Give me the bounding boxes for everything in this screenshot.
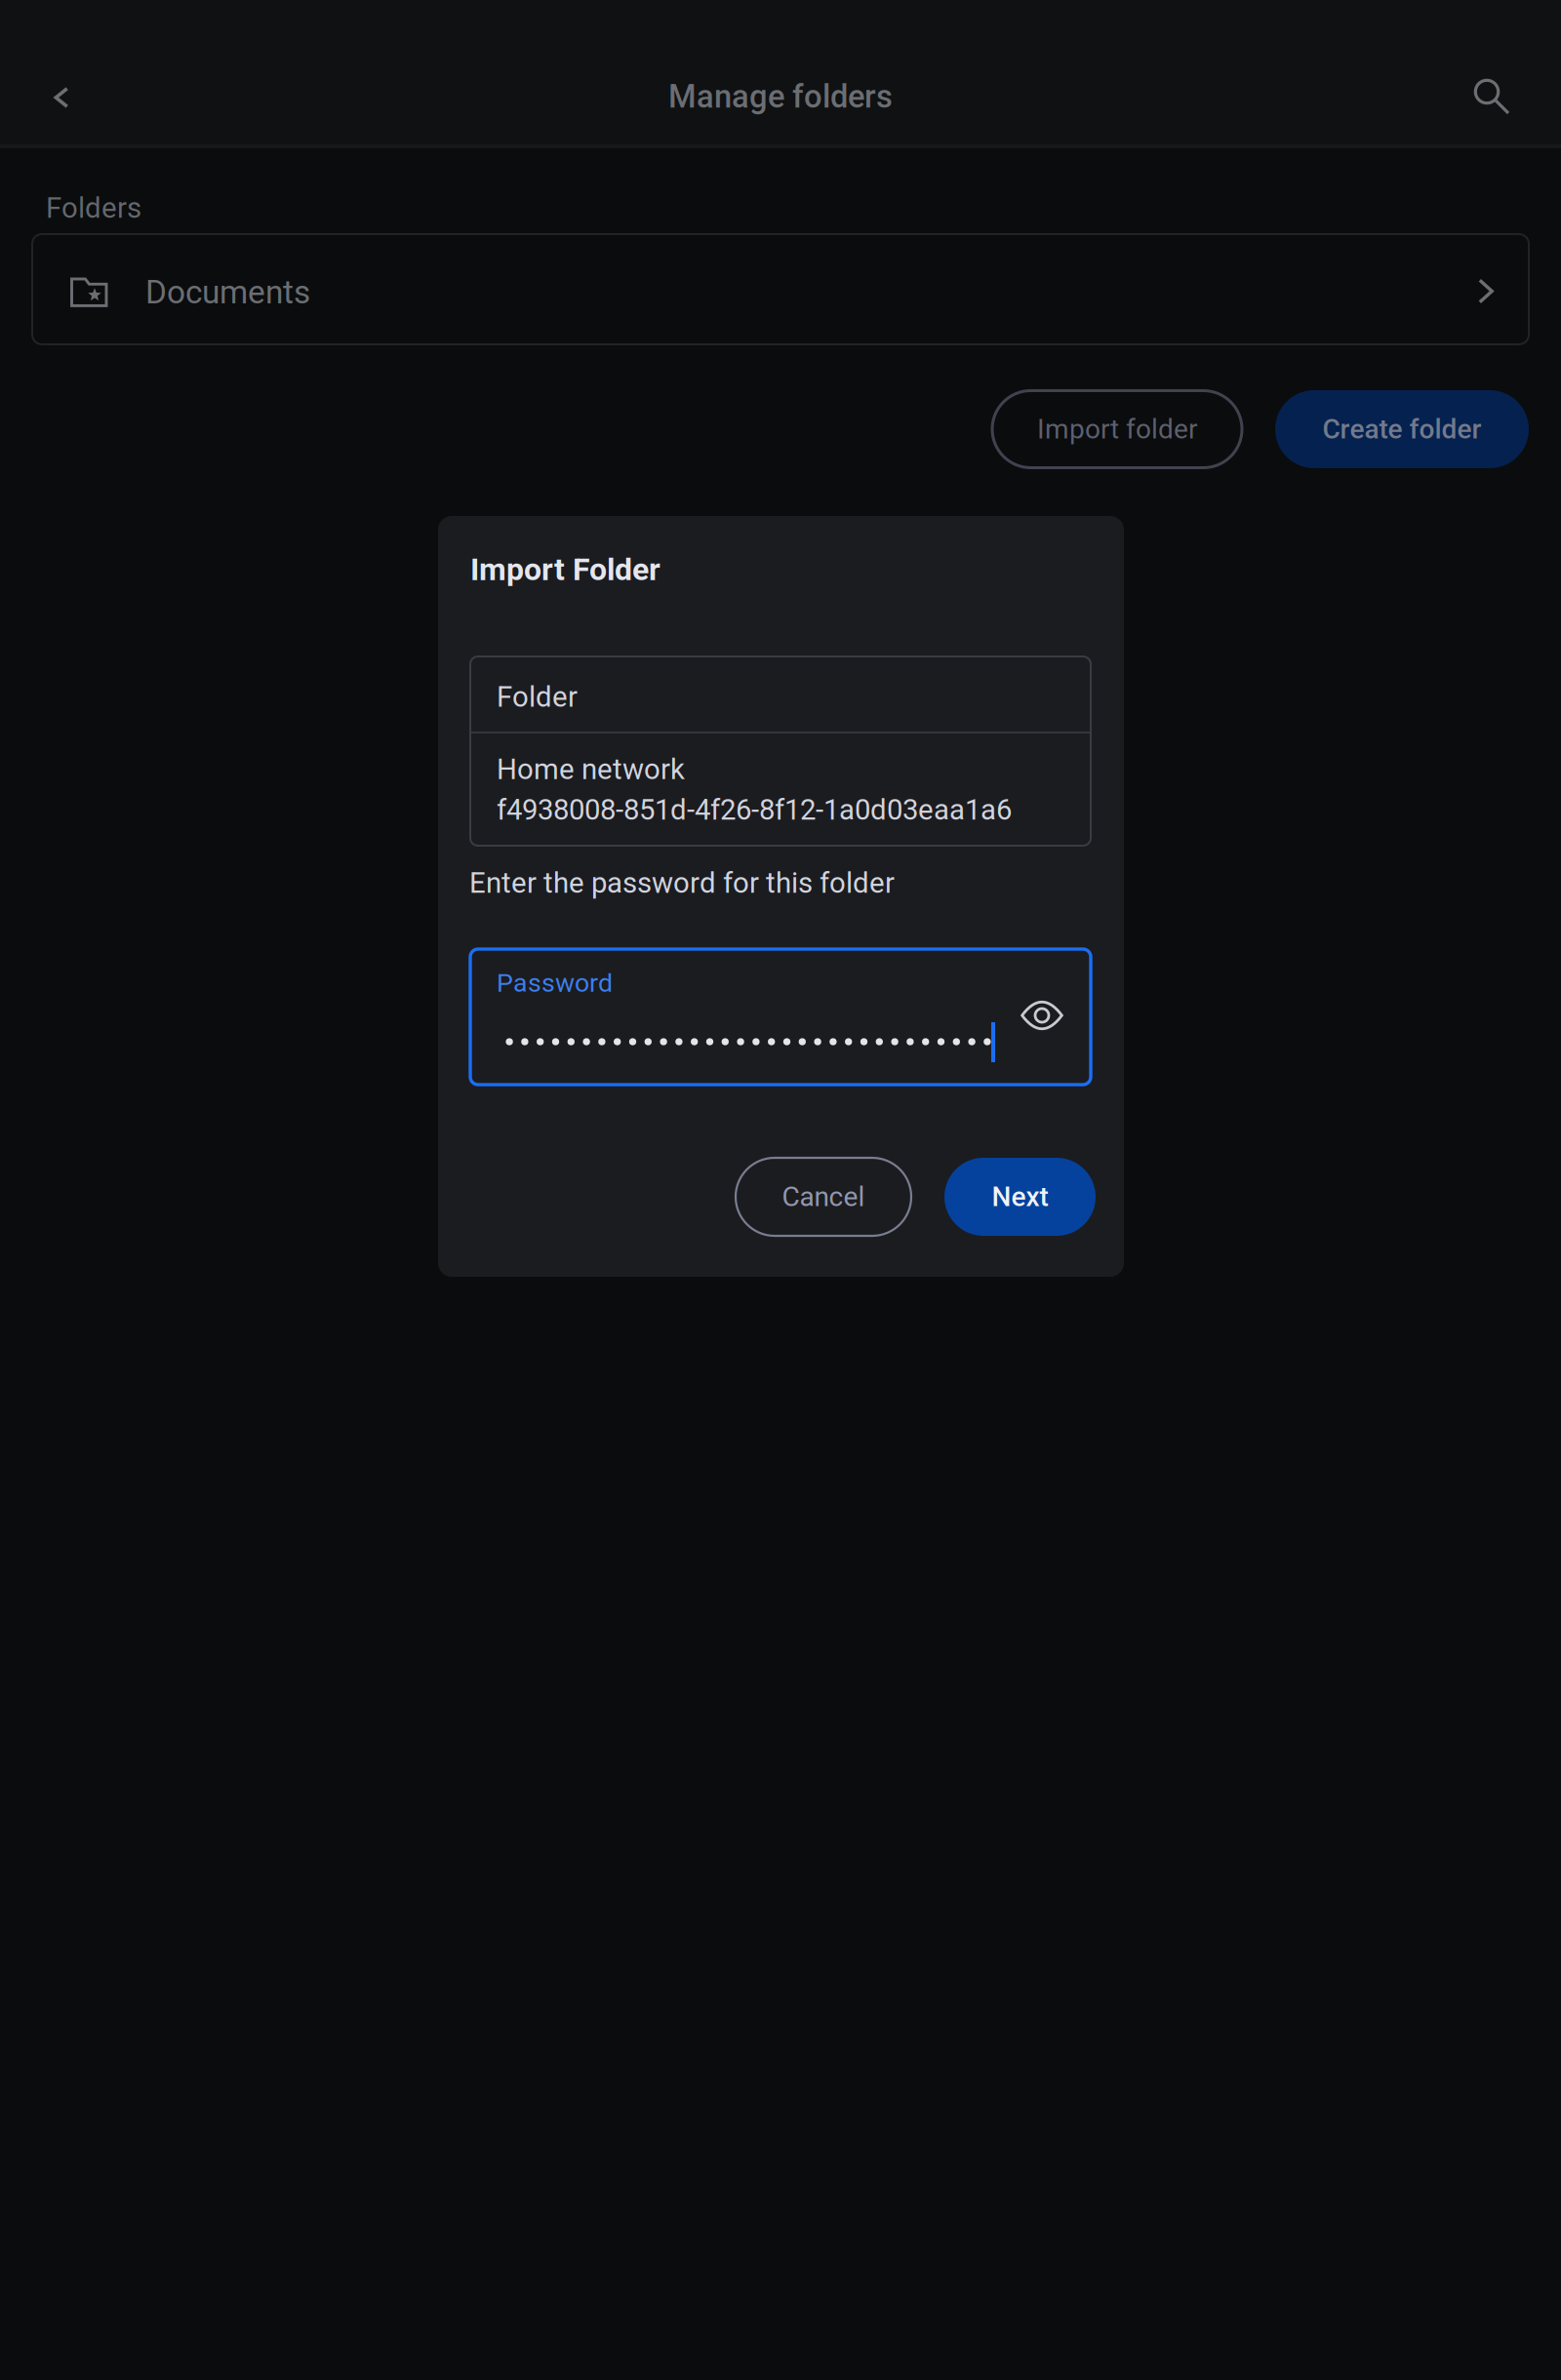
staticText: Password xyxy=(497,968,613,998)
button[interactable]: Search xyxy=(1448,53,1536,140)
staticText: Next xyxy=(992,1181,1048,1213)
staticText: Create folder xyxy=(1322,413,1481,445)
staticText: Documents xyxy=(145,273,310,311)
button[interactable]: Cancel xyxy=(736,1158,911,1236)
staticText: Folders xyxy=(46,191,141,225)
staticText: Home network xyxy=(497,753,685,786)
staticText: Enter the password for this folder xyxy=(469,866,895,900)
staticText: f4938008-851d-4f26-8f12-1a0d03eaa1a6 xyxy=(497,793,1012,827)
staticText: Manage folders xyxy=(668,78,893,115)
staticText: Cancel xyxy=(782,1181,865,1213)
staticText: Import Folder xyxy=(470,551,660,588)
button[interactable]: Back xyxy=(18,54,105,141)
button[interactable]: Create folder xyxy=(1275,390,1529,468)
button[interactable]: Next xyxy=(944,1158,1096,1236)
staticText: Folder xyxy=(497,680,578,714)
button[interactable]: Documents xyxy=(32,234,1529,344)
button[interactable]: Import folder xyxy=(992,391,1242,468)
staticText: Import folder xyxy=(1037,413,1197,445)
